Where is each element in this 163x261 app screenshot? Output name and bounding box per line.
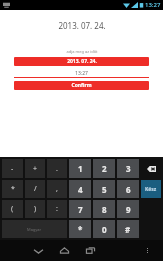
button[interactable]: Home	[51, 240, 77, 261]
button[interactable]: 3	[117, 159, 139, 178]
button[interactable]: 2	[93, 159, 115, 178]
staticText: 2013. 07. 24.	[67, 58, 97, 65]
staticText: 3	[126, 163, 131, 174]
staticText: :	[56, 204, 58, 214]
button[interactable]: )	[25, 200, 45, 218]
button[interactable]: 9	[117, 200, 139, 218]
staticText: Magyar	[27, 227, 42, 232]
button[interactable]: 8	[93, 200, 115, 218]
button[interactable]: :	[47, 200, 67, 218]
staticText: *	[11, 184, 15, 194]
button[interactable]: 5	[93, 180, 115, 198]
button[interactable]: 2013. 07. 24.	[14, 57, 149, 66]
button[interactable]: Kész	[141, 180, 161, 198]
staticText: )	[34, 204, 37, 214]
button[interactable]: 0	[93, 220, 115, 238]
staticText: +	[33, 164, 38, 174]
staticText: *	[78, 224, 83, 235]
button[interactable]: +	[25, 159, 45, 178]
button[interactable]: *	[2, 180, 23, 198]
staticText: 9	[126, 204, 131, 215]
staticText: /	[34, 184, 37, 194]
button[interactable]: 13:27	[14, 69, 149, 78]
button[interactable]: ,	[47, 180, 67, 198]
staticText: 7	[78, 204, 83, 215]
button[interactable]: Back	[25, 240, 51, 261]
button[interactable]: /	[25, 180, 45, 198]
button[interactable]: 1	[69, 159, 91, 178]
staticText: Confirm	[71, 82, 92, 89]
button[interactable]: More options	[137, 240, 158, 261]
button[interactable]: Magyar	[2, 220, 67, 238]
button[interactable]: 4	[69, 180, 91, 198]
staticText: .	[56, 164, 58, 174]
staticText: 0	[102, 224, 107, 235]
staticText: -	[11, 164, 14, 174]
button[interactable]: Confirm	[14, 81, 149, 90]
button[interactable]: *	[69, 220, 91, 238]
button[interactable]: (	[2, 200, 23, 218]
button[interactable]: 7	[69, 200, 91, 218]
button[interactable]: Backspace	[141, 159, 161, 178]
staticText: #	[125, 224, 131, 235]
staticText: 13:27	[145, 1, 161, 9]
button[interactable]: -	[2, 159, 23, 178]
staticText: adja meg az időt	[66, 49, 98, 54]
button[interactable]: #	[117, 220, 139, 238]
staticText: 6	[126, 184, 131, 195]
button[interactable]: 6	[117, 180, 139, 198]
button[interactable]: .	[47, 159, 67, 178]
button[interactable]: Recent apps	[77, 240, 103, 261]
staticText: 5	[102, 184, 107, 195]
staticText: 2	[102, 163, 107, 174]
staticText: 4	[78, 184, 83, 195]
staticText: 1	[78, 163, 83, 174]
staticText: ,	[56, 184, 58, 194]
staticText: 2013. 07. 24.	[58, 20, 106, 31]
staticText: (	[11, 204, 14, 214]
staticText: 13:27	[75, 70, 88, 77]
staticText: Kész	[145, 186, 157, 193]
staticText: 8	[102, 204, 107, 215]
